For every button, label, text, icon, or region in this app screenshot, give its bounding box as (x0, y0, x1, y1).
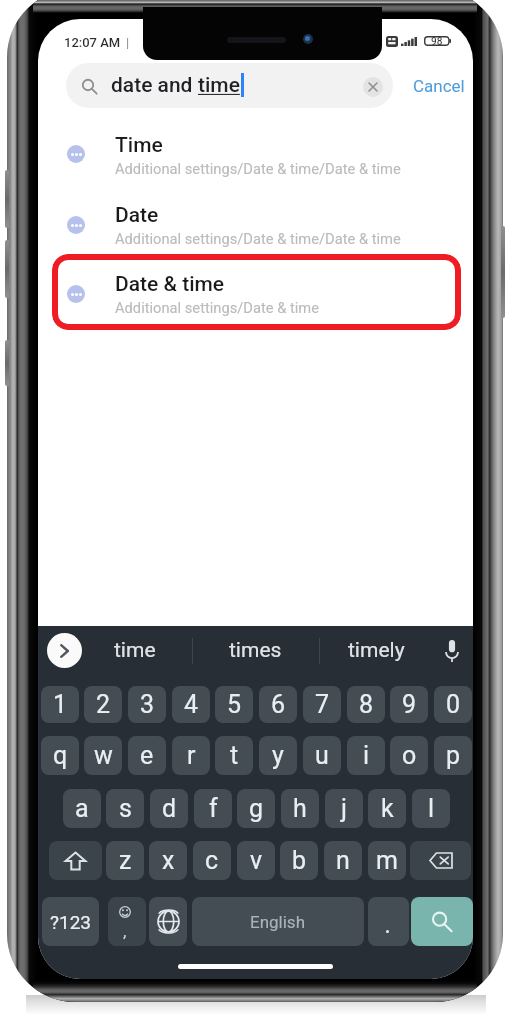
button[interactable]: s (106, 789, 144, 828)
button[interactable]: date and (66, 63, 393, 108)
staticText: Date (115, 203, 159, 228)
staticText: m (376, 846, 398, 875)
button[interactable]: 4 (172, 686, 210, 723)
staticText: v (250, 846, 263, 875)
staticText: | (126, 35, 130, 50)
button[interactable]: k (368, 789, 406, 828)
staticText: a (75, 794, 89, 823)
button[interactable]: Voice input (430, 626, 473, 675)
button[interactable]: l (412, 789, 450, 828)
button[interactable]: Change keyboard language (149, 897, 187, 946)
button[interactable]: j (325, 789, 363, 828)
button[interactable]: e (128, 736, 166, 775)
staticText: 3 (140, 690, 155, 719)
staticText: time (198, 73, 240, 98)
staticText: z (119, 846, 132, 875)
staticText: Additional settings/Date & time/Date & t… (115, 230, 401, 247)
staticText: timely (348, 638, 405, 663)
button[interactable] (38, 119, 473, 183)
button[interactable]: times (200, 626, 310, 675)
staticText: 0 (446, 690, 461, 719)
staticText: Additional settings/Date & time (115, 299, 320, 316)
staticText: l (428, 794, 435, 823)
staticText: p (446, 741, 461, 770)
staticText: e (140, 741, 154, 770)
button[interactable]: m (368, 841, 406, 880)
button[interactable]: a (63, 789, 101, 828)
button[interactable]: d (150, 789, 188, 828)
button[interactable]: u (303, 736, 341, 775)
button[interactable] (38, 258, 473, 322)
button[interactable]: w (84, 736, 122, 775)
staticText: date and (111, 73, 198, 98)
staticText: 7 (315, 690, 330, 719)
button[interactable]: q (41, 736, 79, 775)
staticText: h (293, 794, 307, 823)
staticText: ?123 (50, 911, 92, 933)
button[interactable]: 9 (390, 686, 428, 723)
staticText: English (250, 912, 306, 932)
staticText: k (381, 794, 394, 823)
button[interactable]: Shift (49, 841, 102, 880)
button[interactable]: h (281, 789, 319, 828)
staticText: b (292, 846, 307, 875)
button[interactable]: 5 (215, 686, 253, 723)
staticText: 12:07 AM (64, 35, 121, 50)
button[interactable]: g (237, 789, 275, 828)
button[interactable]: Cancel (405, 63, 473, 108)
button[interactable]: time (80, 626, 190, 675)
button[interactable]: 2 (84, 686, 122, 723)
staticText: 2 (96, 690, 111, 719)
staticText: w (94, 741, 113, 770)
staticText: time (114, 638, 156, 663)
button[interactable]: Clear text (363, 77, 383, 97)
button[interactable]: 3 (128, 686, 166, 723)
staticText: q (53, 741, 68, 770)
button[interactable]: f (194, 789, 232, 828)
button[interactable] (38, 189, 473, 253)
button[interactable]: English (192, 897, 364, 946)
button[interactable]: r (172, 736, 210, 775)
staticText: 5 (227, 690, 242, 719)
button[interactable]: i (347, 736, 385, 775)
button[interactable]: t (215, 736, 253, 775)
button[interactable]: Emoji (108, 897, 146, 946)
button[interactable]: 8 (347, 686, 385, 723)
button[interactable]: n (324, 841, 362, 880)
button[interactable]: 6 (259, 686, 297, 723)
staticText: i (363, 741, 370, 770)
staticText: Time (115, 133, 163, 158)
button[interactable]: timely (321, 626, 431, 675)
button[interactable]: x (149, 841, 187, 880)
button[interactable]: o (390, 736, 428, 775)
button[interactable]: ?123 (42, 897, 99, 946)
staticText: t (230, 741, 239, 770)
staticText: g (249, 794, 264, 823)
staticText: c (205, 846, 219, 875)
button[interactable]: More suggestions (47, 633, 82, 668)
staticText: Cancel (413, 76, 465, 96)
button[interactable]: 0 (434, 686, 472, 723)
staticText: , (123, 921, 127, 941)
staticText: 4 (184, 690, 199, 719)
button[interactable]: Backspace (410, 841, 471, 880)
button[interactable]: c (193, 841, 231, 880)
staticText: times (229, 638, 282, 663)
button[interactable]: v (237, 841, 275, 880)
staticText: j (341, 794, 347, 823)
button[interactable]: b (280, 841, 318, 880)
staticText: 8 (359, 690, 374, 719)
staticText: 98 (431, 36, 443, 48)
button[interactable]: 7 (303, 686, 341, 723)
button[interactable]: Search (411, 897, 473, 946)
button[interactable]: 1 (41, 686, 79, 723)
staticText: s (119, 794, 132, 823)
staticText: o (402, 741, 417, 770)
staticText: f (209, 794, 218, 823)
button[interactable]: Period (368, 897, 409, 946)
button[interactable]: p (434, 736, 472, 775)
button[interactable]: z (106, 841, 144, 880)
staticText: n (336, 846, 350, 875)
staticText: u (315, 741, 329, 770)
button[interactable]: y (259, 736, 297, 775)
